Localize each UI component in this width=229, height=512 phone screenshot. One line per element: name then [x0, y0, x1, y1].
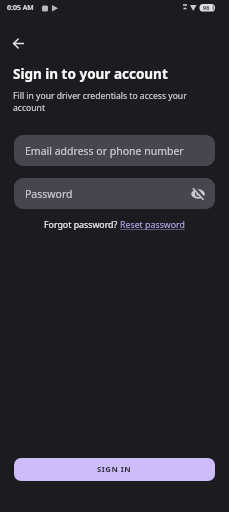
button[interactable]: SIGN IN: [14, 458, 215, 481]
staticText: SIGN IN: [97, 464, 132, 475]
button[interactable]: [8, 33, 28, 53]
staticText: Forgot password?: [44, 219, 120, 231]
staticText: 96: [203, 4, 210, 11]
button[interactable]: Password: [14, 178, 215, 209]
staticText: Sign in to your account: [13, 65, 168, 83]
staticText: Fill in your driver credentials to acces…: [13, 90, 187, 113]
button[interactable]: Email address or phone number: [14, 135, 215, 166]
staticText: Password: [25, 187, 73, 201]
staticText: Email address or phone number: [25, 144, 184, 158]
staticText: 6:05 AM: [7, 3, 34, 13]
button[interactable]: [191, 187, 205, 201]
button[interactable]: Reset password: [120, 219, 185, 231]
